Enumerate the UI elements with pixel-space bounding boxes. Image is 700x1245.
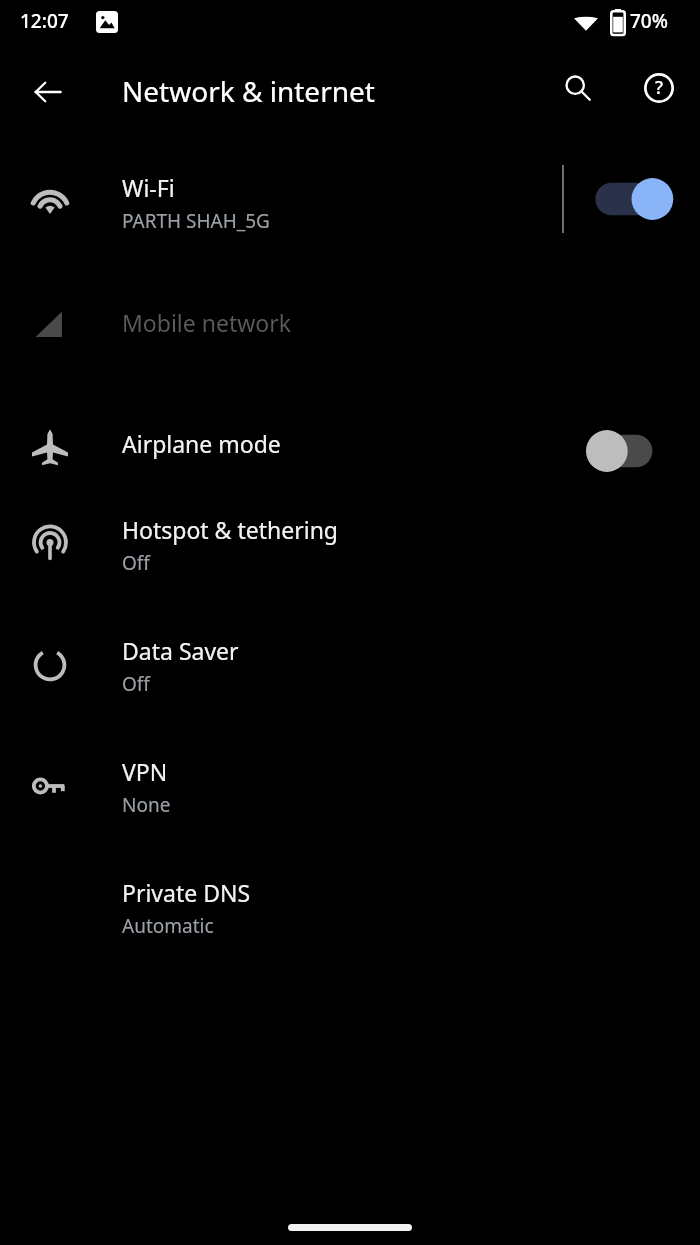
staticText: Data Saver [122,635,239,666]
button[interactable]: Mobile network [0,271,700,392]
button[interactable]: Search [550,60,606,116]
button[interactable]: Private DNS [0,855,700,976]
staticText: 12:07 [20,8,69,34]
staticText: 70% [630,8,668,34]
staticText: Off [122,671,150,697]
staticText: Automatic [122,913,214,939]
staticText: Hotspot & tethering [122,514,338,545]
button[interactable]: VPN [0,734,700,855]
button[interactable]: Help [631,60,687,116]
staticText: Wi-Fi [122,172,175,203]
button[interactable]: Airplane mode [0,392,700,513]
button[interactable]: Data Saver [0,613,700,734]
staticText: VPN [122,756,168,787]
staticText: ? [655,75,664,100]
staticText: Private DNS [122,877,251,908]
staticText: Mobile network [122,307,292,338]
staticText: None [122,792,171,818]
button[interactable]: Wi-Fi [0,150,700,271]
staticText: Off [122,550,150,576]
button[interactable]: Airplane mode off [588,422,680,480]
staticText: PARTH SHAH_5G [122,208,270,234]
staticText: Airplane mode [122,428,281,459]
button[interactable]: Back [20,64,76,120]
button[interactable]: Wi-Fi on [588,170,680,228]
button[interactable]: Hotspot & tethering [0,492,700,613]
staticText: Network & internet [122,72,375,110]
